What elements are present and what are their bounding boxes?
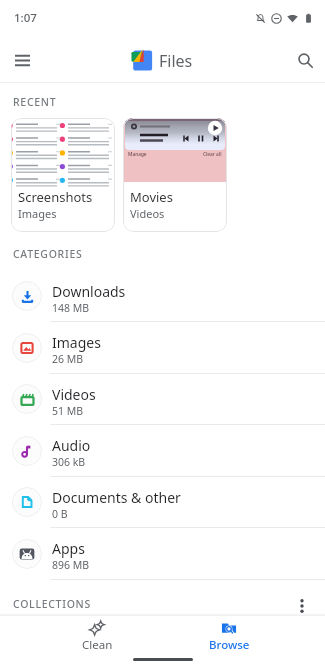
staticText: Downloads [52, 282, 126, 301]
staticText: Videos [52, 385, 96, 404]
button[interactable]: Menu [4, 42, 40, 78]
staticText: RECENT [13, 95, 57, 109]
staticText: Manage [128, 151, 147, 158]
staticText: 306 kB [52, 455, 86, 469]
staticText: 896 MB [52, 558, 90, 572]
button[interactable]: Documents & other [0, 477, 325, 527]
button[interactable]: Clean [31, 616, 163, 656]
staticText: COLLECTIONS [13, 597, 91, 611]
staticText: 26 MB [52, 352, 84, 366]
button[interactable]: More options [290, 594, 314, 618]
staticText: Audio [52, 436, 91, 455]
button[interactable]: Screenshots [11, 118, 115, 232]
button[interactable]: Videos [0, 374, 325, 424]
button[interactable]: Downloads [0, 271, 325, 321]
staticText: Images [18, 206, 57, 221]
button[interactable]: Browse [163, 616, 295, 656]
staticText: Clean [82, 637, 113, 653]
button[interactable]: Audio [0, 425, 325, 476]
button[interactable]: Manage [123, 118, 227, 232]
staticText: Apps [52, 539, 85, 558]
staticText: 0 B [52, 507, 68, 521]
staticText: Documents & other [52, 488, 181, 507]
button[interactable]: Search [287, 42, 323, 78]
button[interactable]: Images [0, 322, 325, 373]
staticText: Clear all [203, 151, 222, 158]
staticText: Browse [209, 637, 250, 653]
staticText: Images [52, 333, 101, 352]
staticText: Files [159, 50, 193, 72]
staticText: Movies [130, 188, 173, 206]
button[interactable]: Apps [0, 528, 325, 579]
staticText: Screenshots [18, 188, 93, 206]
staticText: 148 MB [52, 301, 90, 315]
staticText: Videos [130, 206, 165, 221]
staticText: 51 MB [52, 404, 84, 418]
staticText: CATEGORIES [13, 247, 83, 261]
staticText: 1:07 [14, 10, 37, 26]
